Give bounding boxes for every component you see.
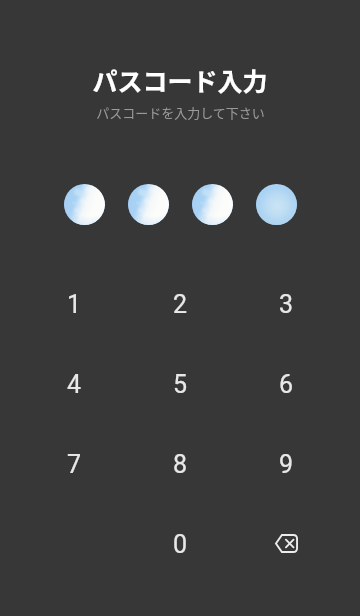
button[interactable]: 4: [21, 344, 127, 424]
staticText: パスコード入力: [92, 62, 268, 98]
button[interactable]: 8: [127, 424, 233, 504]
button[interactable]: 0: [127, 504, 233, 584]
staticText: 9: [279, 450, 294, 479]
button[interactable]: 6: [233, 344, 339, 424]
staticText: 2: [173, 290, 188, 319]
button[interactable]: 3: [233, 264, 339, 344]
staticText: 8: [173, 450, 188, 479]
button[interactable]: 7: [21, 424, 127, 504]
staticText: 6: [279, 370, 294, 399]
button[interactable]: 5: [127, 344, 233, 424]
staticText: パスコードを入力して下さい: [96, 103, 265, 122]
staticText: 0: [173, 530, 188, 559]
staticText: 4: [67, 370, 82, 399]
button[interactable]: 1: [21, 264, 127, 344]
button[interactable]: 2: [127, 264, 233, 344]
staticText: 5: [173, 370, 188, 399]
button[interactable]: Delete last digit: [233, 504, 339, 584]
staticText: 3: [279, 290, 294, 319]
staticText: 7: [67, 450, 82, 479]
staticText: 1: [67, 290, 82, 319]
button[interactable]: 9: [233, 424, 339, 504]
